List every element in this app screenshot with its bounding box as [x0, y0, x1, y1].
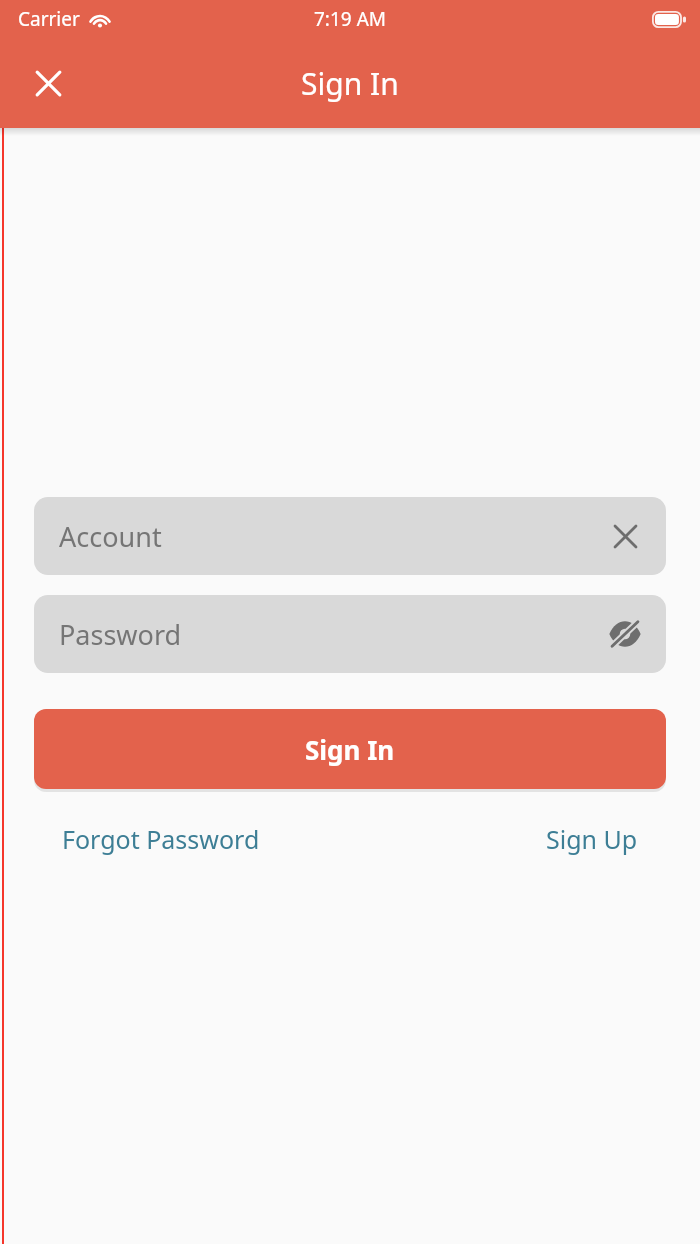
staticText: Password	[59, 616, 604, 653]
staticText: Carrier	[18, 6, 80, 32]
staticText: 7:19 AM	[314, 6, 387, 32]
button[interactable]: Show password	[604, 613, 646, 655]
button[interactable]: Close	[16, 51, 80, 115]
staticText: Forgot Password	[62, 822, 260, 856]
button[interactable]: Account	[34, 497, 666, 575]
staticText: Sign In	[301, 63, 399, 104]
staticText: Account	[59, 518, 604, 555]
button[interactable]: Clear account	[604, 515, 646, 557]
staticText: Sign In	[305, 732, 395, 767]
staticText: Sign Up	[546, 822, 638, 856]
button[interactable]: Password	[34, 595, 666, 673]
button[interactable]: Forgot Password	[34, 814, 288, 864]
button[interactable]: Sign Up	[518, 814, 666, 864]
button[interactable]: Sign In	[34, 709, 666, 789]
